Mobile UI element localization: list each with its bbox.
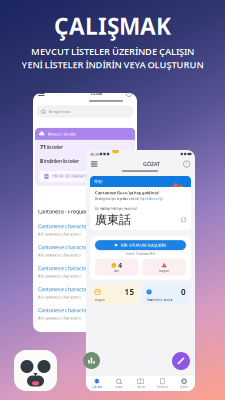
staticText: GÖZAT bbox=[91, 91, 103, 96]
staticText: Cantonese characters bbox=[38, 307, 92, 314]
staticText: Bugün bbox=[159, 269, 169, 273]
button[interactable]: History bbox=[184, 161, 190, 167]
staticText: Desteğiniz için teşekkür ederiz! bbox=[95, 197, 140, 201]
staticText: BİR OTURUM BAŞLATIN bbox=[121, 242, 166, 248]
staticText: ÇALIŞMAK bbox=[54, 11, 171, 41]
staticText: Cantonese characters bbox=[38, 244, 92, 251]
button[interactable]: Cantonese characters bbox=[38, 240, 132, 261]
staticText: Okuma bbox=[136, 385, 144, 389]
staticText: Çalışma bbox=[92, 385, 101, 389]
staticText: Cantonese - Frequency bbox=[38, 208, 94, 215]
staticText: 15 bbox=[124, 287, 134, 297]
button[interactable]: Cantonese characters bbox=[38, 303, 132, 324]
button[interactable]: Messages bbox=[59, 90, 68, 97]
staticText: All cantonese characters bbox=[38, 273, 81, 278]
staticText: Aralıklı Tekrarlama (SRS) bbox=[126, 252, 155, 256]
button[interactable]: Cantonese characters bbox=[38, 261, 132, 282]
staticText: 尊敬! bbox=[94, 179, 103, 184]
staticText: Bu maddeyi hatırlıyor musunuz? bbox=[95, 207, 137, 210]
button[interactable]: Okuma bbox=[130, 378, 151, 389]
button[interactable]: Cantonese characters bbox=[38, 282, 132, 303]
staticText: Seri bbox=[114, 269, 119, 273]
staticText: Ayarlar bbox=[180, 385, 188, 389]
button[interactable]: 71 bbox=[35, 140, 135, 154]
button[interactable]: Kartlarım bbox=[151, 378, 173, 389]
staticText: Cantonese characters bbox=[38, 265, 92, 272]
staticText: Mevcut listeler bbox=[47, 131, 76, 137]
staticText: All cantonese characters bbox=[38, 231, 81, 236]
staticText: MEVCUT LİSTELER ÜZERİNDE ÇALIŞIN bbox=[31, 45, 194, 57]
button[interactable]: Çalışma bbox=[86, 378, 108, 389]
button[interactable]: Menu bbox=[91, 161, 97, 166]
button[interactable]: Statistics bbox=[83, 352, 100, 369]
staticText: Devam eden sorular bbox=[146, 298, 172, 302]
staticText: 71 bbox=[40, 143, 46, 150]
button[interactable]: Refresh bbox=[181, 217, 186, 222]
staticText: Araştırmacı bbox=[49, 109, 71, 114]
button[interactable]: BİR OTURUM BAŞLATIN bbox=[95, 240, 186, 250]
staticText: All cantonese characters bbox=[38, 252, 81, 257]
button[interactable]: Okuma bbox=[75, 334, 95, 344]
staticText: Cantonese characters bbox=[38, 223, 92, 230]
button[interactable]: Menu bbox=[38, 91, 44, 96]
staticText: 08:34 bbox=[89, 151, 98, 157]
button[interactable]: Arama bbox=[108, 378, 130, 389]
staticText: YENİ BİR LİSTE TASARLAYIN bbox=[52, 175, 88, 178]
staticText: Cantonese Guru'ya hoş geldiniz! bbox=[95, 190, 159, 195]
staticText: GÖZAT bbox=[143, 160, 160, 168]
staticText: listeler bbox=[46, 143, 63, 150]
staticText: Okuma bbox=[81, 341, 89, 344]
staticText: YENİ LİSTELER İNDİRİN VEYA OLUŞTURUN bbox=[21, 58, 203, 71]
staticText: Üyelik aboneliği bbox=[140, 197, 163, 201]
button[interactable]: 8 bbox=[35, 154, 135, 168]
button[interactable]: YENİ BİR LİSTE TASARLAYIN bbox=[39, 171, 131, 182]
staticText: 8 bbox=[40, 157, 43, 164]
button[interactable]: Compose bbox=[172, 352, 190, 370]
staticText: 廣東話 bbox=[95, 212, 131, 227]
button[interactable]: Araştırmacı bbox=[37, 106, 133, 117]
staticText: Arama bbox=[115, 385, 122, 389]
staticText: indirilen listeler bbox=[43, 157, 79, 164]
staticText: Bugün bbox=[95, 298, 105, 302]
staticText: All cantonese characters bbox=[38, 294, 81, 299]
staticText: All cantonese characters bbox=[38, 315, 81, 320]
staticText: 4 bbox=[118, 261, 122, 270]
button[interactable]: Ayarlar bbox=[173, 378, 195, 389]
button[interactable]: Cantonese characters bbox=[38, 219, 132, 240]
button[interactable]: History bbox=[126, 90, 132, 96]
staticText: Kartlarım bbox=[157, 385, 168, 389]
staticText: 0 bbox=[181, 287, 186, 297]
staticText: Cantonese characters bbox=[38, 286, 92, 293]
